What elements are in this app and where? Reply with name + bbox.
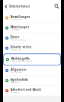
button[interactable]: Search	[53, 0, 61, 13]
staticText: Unternehmen	[9, 5, 30, 8]
staticText: Push, E-Mail, Ton	[10, 29, 20, 31]
staticText: Sprache, Region	[10, 71, 22, 73]
staticText: Einstellungen	[10, 15, 30, 19]
staticText: Allgemein	[10, 68, 26, 71]
staticText: Sicherheit und Schutz	[10, 88, 40, 91]
staticText: Daten	[10, 35, 19, 39]
button[interactable]: Ergebnisliste	[3, 76, 61, 86]
button[interactable]: Mitteilungen	[3, 23, 61, 33]
button[interactable]: Einstellungen	[3, 13, 61, 23]
staticText: Werkbegriffe	[11, 57, 30, 60]
staticText: Team, Gruppen	[10, 49, 21, 51]
staticText: Speicher und Backup	[10, 39, 26, 41]
button[interactable]: Inhalte teilen	[3, 43, 61, 53]
staticText: Verwende mehrere Begriffe	[11, 60, 32, 62]
staticText: Inhalte teilen	[10, 45, 31, 49]
button[interactable]: Sicherheit und Schutz	[3, 86, 61, 96]
staticText: Ergebnisliste	[10, 78, 28, 81]
button[interactable]: Daten	[3, 33, 61, 43]
button[interactable]: Back	[3, 0, 9, 13]
staticText: Passwort, 2FA	[10, 92, 20, 93]
button[interactable]: Allgemein	[3, 66, 61, 76]
staticText: Mitteilungen	[10, 25, 29, 29]
staticText: Filter, Sortierung	[10, 81, 20, 83]
button[interactable]: Werkbegriffe	[4, 54, 60, 65]
staticText: Konto und Profil	[10, 19, 21, 21]
